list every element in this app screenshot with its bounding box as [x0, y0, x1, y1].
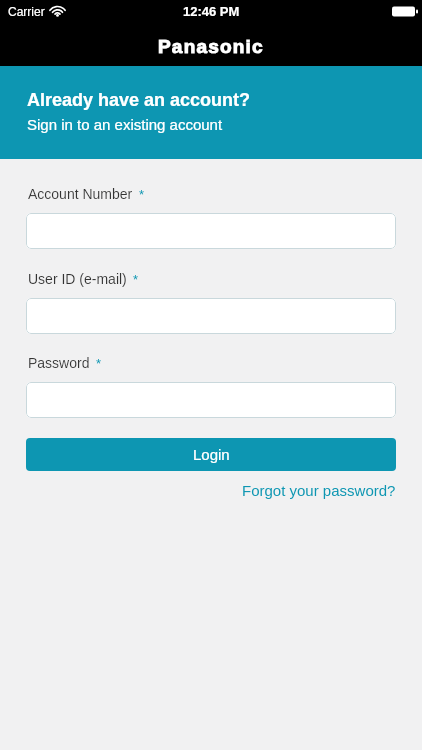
staticText: Already have an account? — [27, 90, 251, 110]
button[interactable] — [26, 298, 396, 334]
staticText: Account Number — [28, 186, 133, 202]
staticText: * — [139, 187, 145, 202]
button[interactable] — [26, 382, 396, 418]
button[interactable]: Login — [26, 438, 396, 471]
staticText: Sign in to an existing account — [27, 116, 223, 133]
staticText: User ID (e-mail) — [28, 271, 127, 287]
staticText: * — [96, 356, 102, 371]
button[interactable] — [26, 213, 396, 249]
staticText: 12:46 PM — [183, 4, 240, 19]
staticText: Forgot your password? — [242, 482, 396, 499]
staticText: Panasonic — [158, 36, 264, 57]
staticText: * — [133, 272, 139, 287]
staticText: Password — [28, 355, 90, 371]
button[interactable]: Forgot your password? — [242, 482, 396, 499]
staticText: Login — [193, 446, 230, 463]
staticText: Carrier — [8, 5, 45, 18]
